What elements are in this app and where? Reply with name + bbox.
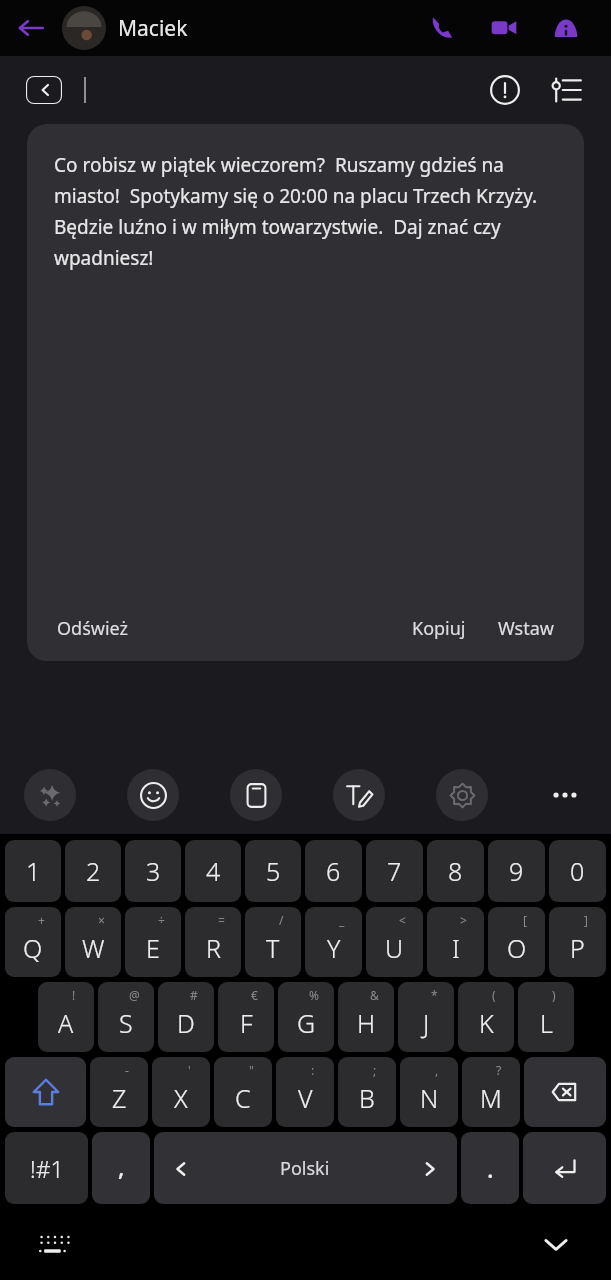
staticText: !	[72, 987, 76, 1003]
staticText: Q	[23, 931, 43, 965]
staticText: .	[487, 1152, 494, 1185]
button[interactable]: 5	[245, 840, 301, 902]
button[interactable]: 3	[125, 840, 181, 902]
staticText: 2	[86, 854, 101, 888]
button[interactable]: &	[338, 982, 394, 1052]
button[interactable]: 7	[366, 840, 423, 902]
button[interactable]: Call	[411, 0, 473, 56]
button[interactable]: %	[278, 982, 334, 1052]
button[interactable]: 8	[427, 840, 484, 902]
button[interactable]: ;	[338, 1057, 396, 1127]
button[interactable]: Odśwież	[51, 608, 134, 649]
button[interactable]: Contact info	[535, 0, 597, 56]
button[interactable]: <	[366, 907, 423, 977]
button[interactable]: !	[38, 982, 94, 1052]
button[interactable]: _	[305, 907, 362, 977]
staticText: %	[309, 987, 319, 1003]
staticText: C	[235, 1081, 251, 1115]
button[interactable]: ,	[92, 1132, 150, 1204]
button[interactable]: .	[461, 1132, 519, 1204]
button[interactable]: 0	[549, 840, 606, 902]
button[interactable]: Info	[479, 64, 531, 116]
button[interactable]: +	[5, 907, 61, 977]
staticText: ;	[373, 1062, 377, 1078]
button[interactable]: More	[539, 769, 591, 821]
staticText: D	[177, 1006, 195, 1040]
button[interactable]: Settings	[541, 64, 593, 116]
button[interactable]: ?	[462, 1057, 520, 1127]
staticText: F	[240, 1006, 253, 1040]
staticText: €	[251, 987, 258, 1003]
button[interactable]: Enter	[523, 1132, 606, 1204]
button[interactable]: Hide keyboard	[501, 1208, 611, 1280]
button[interactable]: Shift	[5, 1057, 86, 1127]
staticText: R	[206, 931, 221, 965]
staticText: *	[431, 987, 438, 1003]
button[interactable]: /	[245, 907, 301, 977]
staticText: (	[492, 987, 496, 1003]
staticText: 8	[448, 854, 463, 888]
button[interactable]: =	[185, 907, 241, 977]
button[interactable]: ,	[400, 1057, 458, 1127]
staticText: S	[119, 1006, 133, 1040]
staticText: :	[311, 1062, 315, 1078]
staticText: Maciek	[118, 14, 188, 43]
staticText: W	[82, 931, 105, 965]
staticText: 5	[266, 854, 281, 888]
button[interactable]: ÷	[125, 907, 181, 977]
staticText: _	[339, 912, 345, 928]
staticText: 7	[387, 854, 402, 888]
staticText: N	[420, 1081, 439, 1115]
button[interactable]: Emoji	[127, 769, 179, 821]
staticText: G	[297, 1006, 316, 1040]
button[interactable]: [	[488, 907, 545, 977]
staticText: 3	[146, 854, 161, 888]
button[interactable]: Magic	[24, 769, 76, 821]
button[interactable]: Polski	[154, 1132, 457, 1204]
button[interactable]: :	[276, 1057, 334, 1127]
button[interactable]: Settings	[436, 769, 488, 821]
button[interactable]: Clipboard	[230, 769, 282, 821]
staticText: I	[452, 931, 460, 965]
button[interactable]: 9	[488, 840, 545, 902]
button[interactable]: Switch keyboard	[0, 1208, 110, 1280]
button[interactable]: 6	[305, 840, 362, 902]
button[interactable]: (	[458, 982, 514, 1052]
button[interactable]: €	[218, 982, 274, 1052]
staticText: B	[359, 1081, 375, 1115]
staticText: Z	[112, 1081, 127, 1115]
staticText: ÷	[158, 912, 165, 928]
button[interactable]: Backspace	[524, 1057, 606, 1127]
staticText: T	[266, 931, 280, 965]
button[interactable]: -	[90, 1057, 148, 1127]
staticText: Kopiuj	[412, 616, 466, 641]
button[interactable]: !#1	[5, 1132, 88, 1204]
button[interactable]: @	[98, 982, 154, 1052]
button[interactable]: Back	[26, 76, 62, 104]
button[interactable]: '	[152, 1057, 210, 1127]
staticText: H	[357, 1006, 376, 1040]
button[interactable]	[62, 6, 106, 50]
button[interactable]: Back	[0, 0, 62, 56]
button[interactable]: "	[214, 1057, 272, 1127]
button[interactable]: 1	[5, 840, 61, 902]
staticText: Polski	[280, 1156, 330, 1181]
staticText: ,	[118, 1150, 125, 1183]
button[interactable]: Wstaw	[492, 608, 560, 649]
button[interactable]: Video call	[473, 0, 535, 56]
button[interactable]: Handwriting	[333, 769, 385, 821]
button[interactable]: #	[158, 982, 214, 1052]
button[interactable]: >	[427, 907, 484, 977]
staticText: 0	[570, 854, 585, 888]
button[interactable]: )	[518, 982, 574, 1052]
staticText: >	[460, 912, 467, 928]
staticText: #	[190, 987, 198, 1003]
button[interactable]: 2	[65, 840, 121, 902]
staticText: O	[507, 931, 527, 965]
button[interactable]: ]	[549, 907, 606, 977]
button[interactable]: ×	[65, 907, 121, 977]
button[interactable]: Kopiuj	[406, 608, 472, 649]
button[interactable]: *	[398, 982, 454, 1052]
staticText: 9	[509, 854, 524, 888]
button[interactable]: 4	[185, 840, 241, 902]
